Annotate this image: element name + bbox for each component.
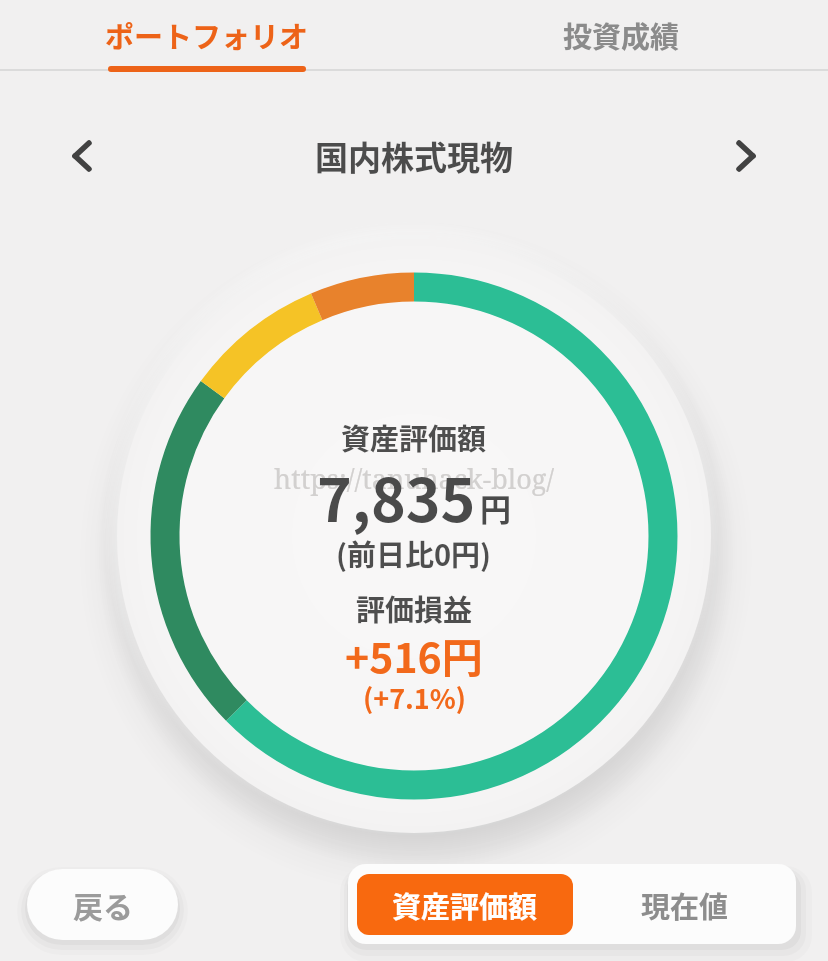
button[interactable]: 投資成績 [414,0,828,70]
button[interactable]: 戻る [27,869,178,940]
staticText: 国内株式現物 [315,132,513,180]
staticText: 円 [480,485,511,530]
staticText: 7,835 [317,454,476,539]
button[interactable] [58,130,108,182]
button[interactable]: 資産評価額 [357,874,573,935]
button[interactable] [720,130,770,182]
staticText: 評価損益 [356,587,473,629]
staticText: (+7.1%) [363,678,466,717]
staticText: +516円 [345,625,483,684]
staticText: ポートフォリオ [105,14,309,56]
staticText: https://tanuhack-blog/ [274,460,555,497]
staticText: 投資成績 [563,14,680,56]
button[interactable]: 現在値 [573,874,796,935]
button[interactable]: ポートフォリオ [0,0,414,70]
staticText: 現在値 [641,884,729,926]
staticText: 戻る [73,883,133,926]
staticText: 資産評価額 [392,884,538,926]
staticText: (前日比0円) [336,532,492,574]
staticText: 資産評価額 [341,416,487,458]
